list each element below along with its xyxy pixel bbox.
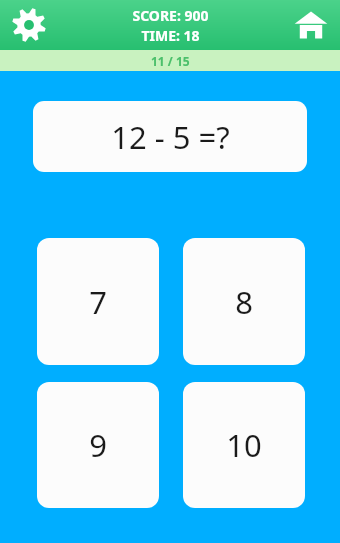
staticText: 7: [89, 281, 107, 323]
button[interactable]: 12 - 5 =?: [33, 101, 307, 172]
button[interactable]: 8: [183, 238, 305, 365]
staticText: 12 - 5 =?: [111, 116, 230, 158]
staticText: SCORE: 900: [132, 6, 209, 25]
button[interactable]: 10: [183, 382, 305, 508]
button[interactable]: Settings: [6, 2, 52, 48]
staticText: 10: [226, 424, 262, 466]
button[interactable]: Home: [288, 2, 334, 48]
staticText: 8: [235, 281, 253, 323]
button[interactable]: 9: [37, 382, 159, 508]
button[interactable]: 7: [37, 238, 159, 365]
staticText: TIME: 18: [141, 26, 200, 45]
staticText: 11 / 15: [151, 53, 190, 69]
staticText: 9: [89, 424, 107, 466]
